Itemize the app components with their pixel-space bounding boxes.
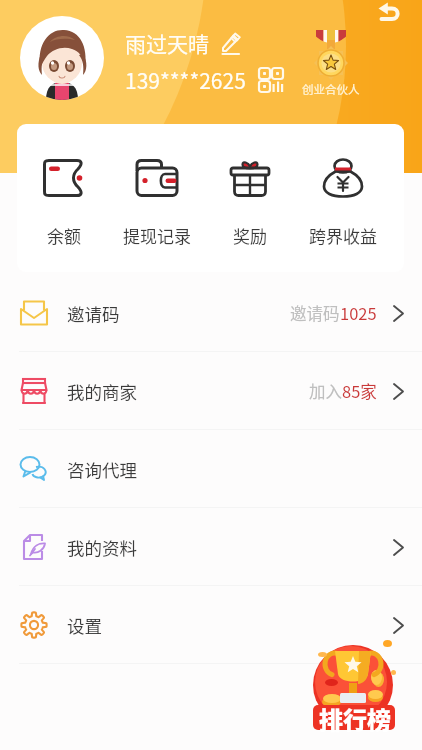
staticText: 创业合伙人 (302, 81, 360, 98)
button[interactable]: 邀请码 (0, 274, 422, 352)
button[interactable]: QR code (256, 65, 286, 95)
staticText: 1025 (340, 301, 377, 325)
button[interactable]: 我的资料 (0, 508, 422, 586)
button[interactable]: 咨询代理 (0, 430, 422, 508)
staticText: 139****2625 (125, 65, 246, 95)
staticText: 咨询代理 (67, 457, 137, 482)
staticText: 雨过天晴 (125, 28, 209, 58)
staticText: 我的商家 (67, 379, 137, 404)
button[interactable]: Avatar (20, 16, 104, 100)
button[interactable]: Edit name (218, 31, 243, 56)
staticText: 排行榜 (319, 701, 391, 736)
staticText: 邀请码 (67, 301, 120, 326)
staticText: 我的资料 (67, 535, 137, 560)
staticText: 设置 (67, 613, 102, 638)
staticText: 邀请码 (290, 301, 340, 325)
staticText: 85家 (342, 379, 377, 403)
button[interactable]: Leaderboard (310, 640, 404, 735)
button[interactable]: 提现记录 (110, 124, 203, 272)
staticText: 提现记录 (123, 223, 191, 248)
button[interactable]: 奖励 (203, 124, 296, 272)
button[interactable]: 设置 (0, 586, 422, 664)
staticText: 加入 (309, 379, 342, 403)
button[interactable]: 跨界收益 (296, 124, 389, 272)
button[interactable]: 我的商家 (0, 352, 422, 430)
button[interactable]: Back (373, 0, 407, 32)
button[interactable]: 创业合伙人 (299, 27, 363, 98)
staticText: 余额 (47, 223, 81, 248)
staticText: 奖励 (233, 223, 267, 248)
staticText: 跨界收益 (309, 223, 377, 248)
button[interactable]: 余额 (17, 124, 110, 272)
